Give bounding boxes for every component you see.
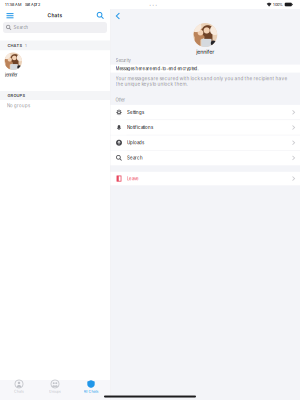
staticText: 100% [273, 2, 283, 7]
button[interactable]: Settings [110, 105, 300, 120]
staticText: Security [115, 58, 130, 63]
button[interactable]: Chats [1, 379, 37, 395]
staticText: Search [127, 155, 143, 160]
staticText: Other [115, 97, 125, 102]
button[interactable]: Notifications [110, 120, 300, 135]
staticText: All Chats [83, 389, 98, 394]
staticText: No groups [7, 103, 30, 108]
staticText: • • • [149, 3, 157, 6]
staticText: 1 [25, 43, 27, 48]
button[interactable]: All Chats [73, 379, 109, 395]
button[interactable]: jennifer [0, 50, 110, 91]
staticText: CHATS [7, 43, 22, 48]
staticText: Leave [127, 176, 139, 181]
staticText: Messages here are end-to-end encrypted. [115, 66, 198, 71]
button[interactable]: Uploads [110, 135, 300, 150]
staticText: Settings [127, 110, 144, 115]
button[interactable]: Groups [37, 379, 73, 395]
staticText: Your messages are secured with locks and… [115, 76, 287, 87]
staticText: Search [13, 25, 28, 30]
button[interactable]: Menu [4, 10, 16, 20]
staticText: Groups [49, 389, 61, 394]
button[interactable]: Search [95, 10, 106, 21]
staticText: GROUPS [7, 93, 25, 98]
staticText: jennifer [196, 48, 214, 55]
button[interactable]: Back [112, 10, 123, 21]
staticText: Notifications [127, 125, 153, 130]
button[interactable]: Search [110, 150, 300, 165]
staticText: jennifer [5, 72, 18, 77]
staticText: Chats [47, 13, 62, 18]
staticText: 11:58 AM [5, 2, 21, 7]
staticText: Sat Apr 2 [25, 2, 40, 7]
button[interactable]: Search [3, 22, 107, 33]
staticText: Chats [14, 389, 24, 394]
staticText: Uploads [127, 140, 144, 145]
button[interactable]: Leave [110, 172, 300, 185]
